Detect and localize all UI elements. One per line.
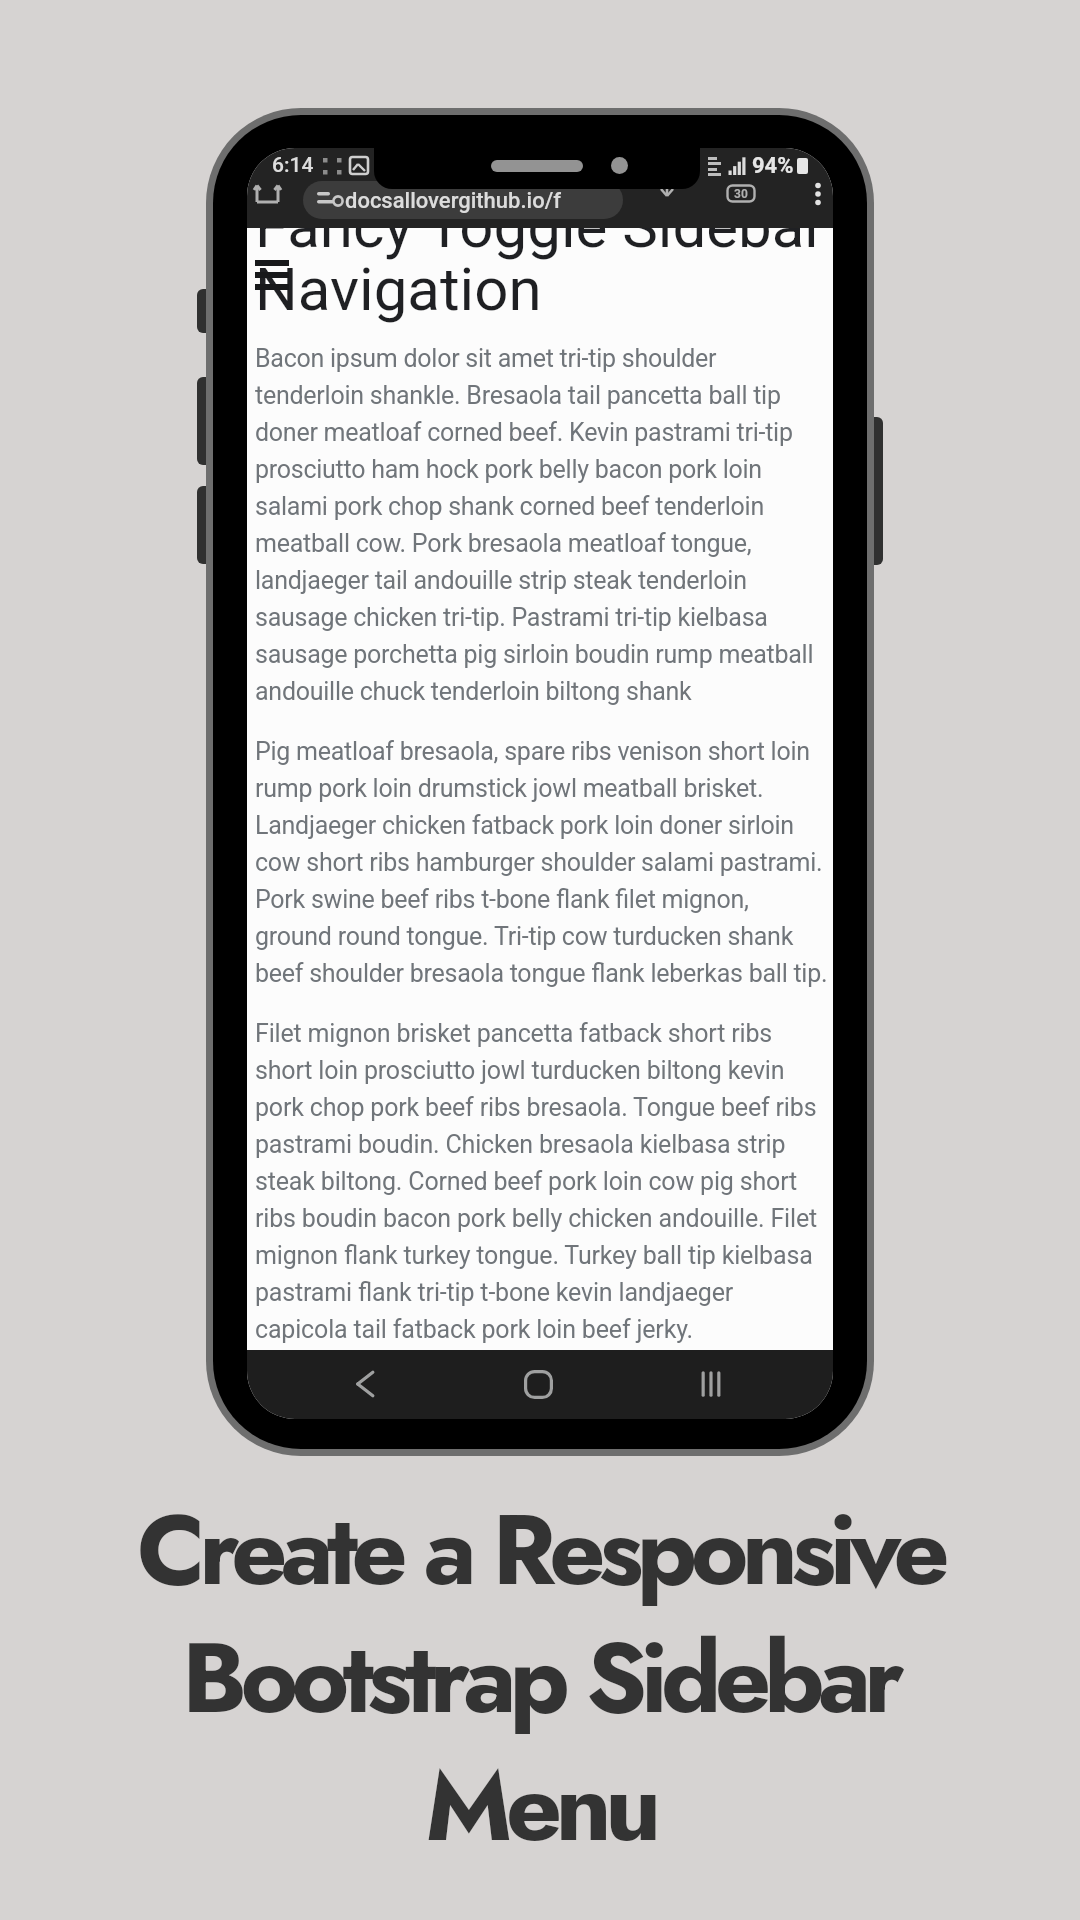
- button[interactable]: Home: [524, 1370, 553, 1399]
- staticText: 30: [734, 187, 748, 201]
- button[interactable]: More options: [808, 182, 828, 206]
- button[interactable]: Recent apps: [697, 1370, 725, 1398]
- staticText: 94%: [752, 153, 794, 179]
- staticText: docsallovergithub.io/f: [345, 188, 561, 214]
- staticText: Pig meatloaf bresaola, spare ribs veniso…: [255, 737, 829, 989]
- staticText: Filet mignon brisket pancetta fatback sh…: [255, 1019, 829, 1345]
- staticText: 6:14: [272, 153, 314, 178]
- staticText: Create a Responsive Bootstrap Sidebar Me…: [0, 1479, 1080, 1877]
- button[interactable]: Tabs: [726, 184, 756, 203]
- staticText: Fancy Toggle Sidebar Navigation: [255, 191, 829, 325]
- button[interactable]: Back: [351, 1370, 379, 1398]
- button[interactable]: Back to app: [254, 184, 281, 204]
- staticText: Bacon ipsum dolor sit amet tri-tip shoul…: [255, 344, 829, 707]
- button[interactable]: Address bar: [303, 181, 623, 219]
- button[interactable]: Open menu: [255, 261, 289, 289]
